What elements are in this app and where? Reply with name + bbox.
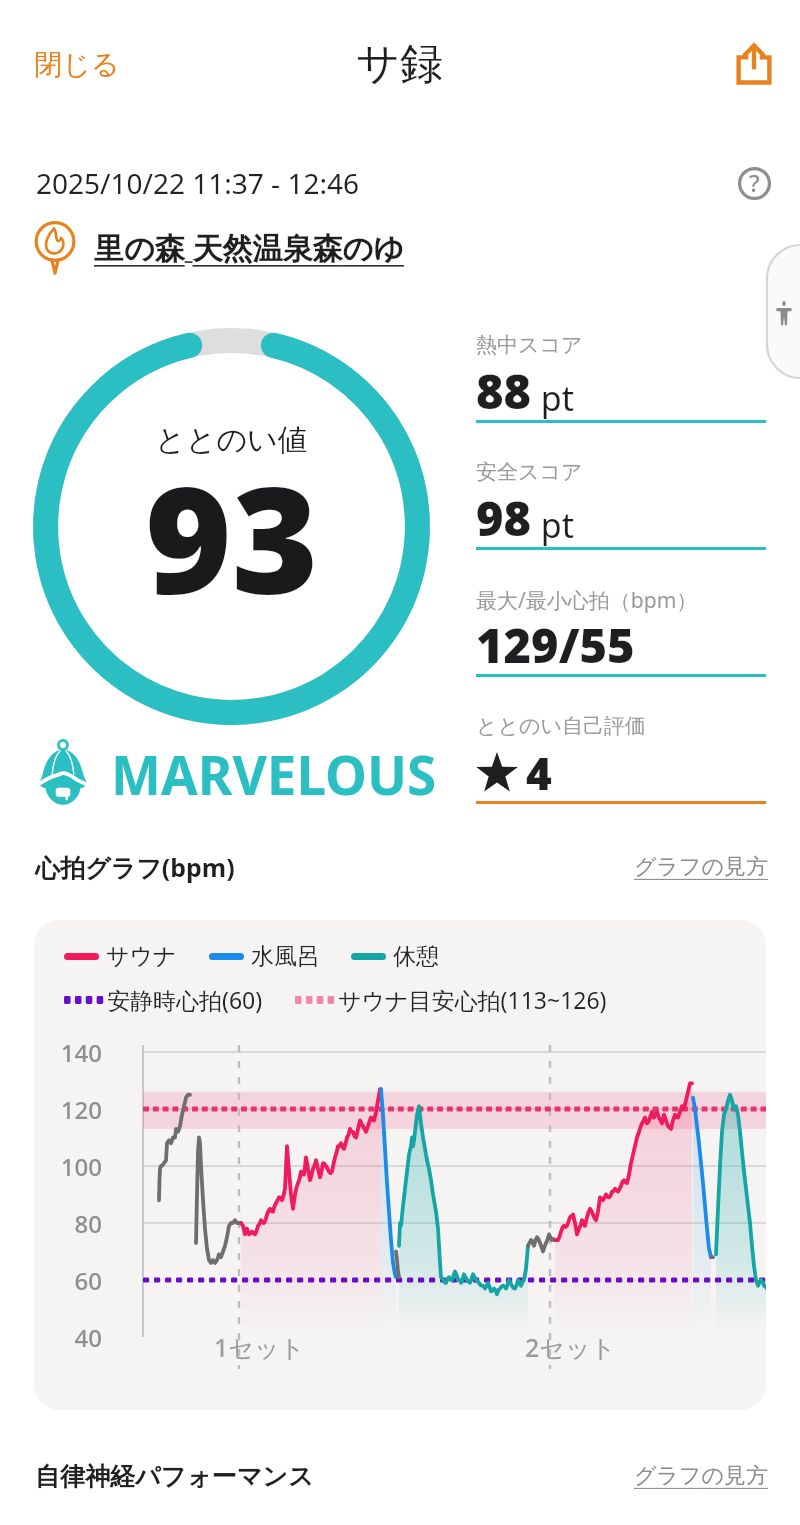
staticText: 熱中スコア xyxy=(476,332,583,358)
staticText: サ録 xyxy=(356,37,444,91)
staticText: 98 xyxy=(476,486,532,550)
staticText: ? xyxy=(749,166,760,199)
staticText: 140 xyxy=(36,1036,102,1069)
staticText: 80 xyxy=(36,1207,102,1240)
staticText: 心拍グラフ(bpm) xyxy=(35,850,235,884)
button[interactable]: Share xyxy=(726,36,782,92)
staticText: サウナ xyxy=(106,942,177,971)
staticText: 120 xyxy=(36,1093,102,1126)
staticText: 93 xyxy=(145,436,319,638)
button[interactable]: 閉じる xyxy=(14,37,140,92)
staticText: 水風呂 xyxy=(251,942,320,971)
staticText: 閉じる xyxy=(34,47,120,82)
staticText: 2セット xyxy=(525,1330,617,1364)
button[interactable]: グラフの見方 xyxy=(634,1462,769,1490)
staticText: 里の森 天然温泉森のゆ xyxy=(94,227,404,268)
staticText: pt xyxy=(532,502,575,548)
staticText: 2025/10/22 11:37 - 12:46 xyxy=(36,164,359,202)
staticText: MARVELOUS xyxy=(111,738,437,810)
staticText: 安全スコア xyxy=(476,459,583,485)
staticText: 安静時心拍(60) xyxy=(107,984,263,1015)
button[interactable]: 里の森 天然温泉森のゆ xyxy=(26,214,404,280)
staticText: 100 xyxy=(36,1150,102,1183)
staticText: ととのい自己評価 xyxy=(476,713,646,739)
staticText: グラフの見方 xyxy=(634,853,769,881)
staticText: 休憩 xyxy=(393,942,439,971)
staticText: 自律神経パフォーマンス xyxy=(35,1461,314,1492)
button[interactable]: Accessibility xyxy=(767,245,800,378)
staticText: 40 xyxy=(36,1321,102,1354)
staticText: サウナ目安心拍(113~126) xyxy=(338,984,607,1015)
staticText: 1セット xyxy=(214,1330,306,1364)
staticText: 88 xyxy=(476,359,532,423)
button[interactable]: グラフの見方 xyxy=(634,853,769,881)
staticText: ととのい値 xyxy=(155,421,308,459)
staticText: 4 xyxy=(526,743,552,803)
staticText: 最大/最小心拍（bpm） xyxy=(476,586,698,615)
staticText: pt xyxy=(532,375,575,421)
staticText: 129/55 xyxy=(476,613,635,677)
staticText: 60 xyxy=(36,1264,102,1297)
button[interactable]: Help xyxy=(732,161,776,205)
staticText: グラフの見方 xyxy=(634,1462,769,1490)
